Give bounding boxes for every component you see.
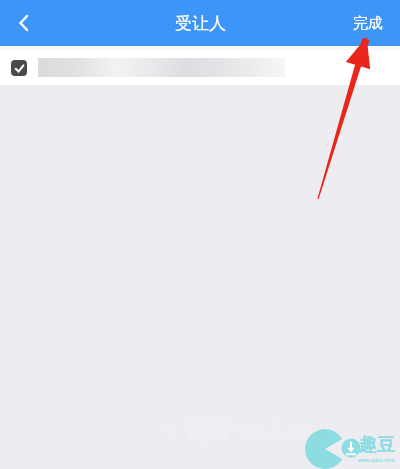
button[interactable]: 完成	[336, 0, 400, 46]
staticText: 趣豆	[359, 434, 395, 457]
staticText: www.qdou.com	[358, 457, 395, 464]
button[interactable]: Back	[0, 0, 48, 46]
button[interactable]	[0, 50, 400, 85]
staticText: 受让人	[175, 13, 226, 34]
staticText: 1337WAN	[158, 408, 314, 453]
staticText: 完成	[353, 14, 383, 33]
